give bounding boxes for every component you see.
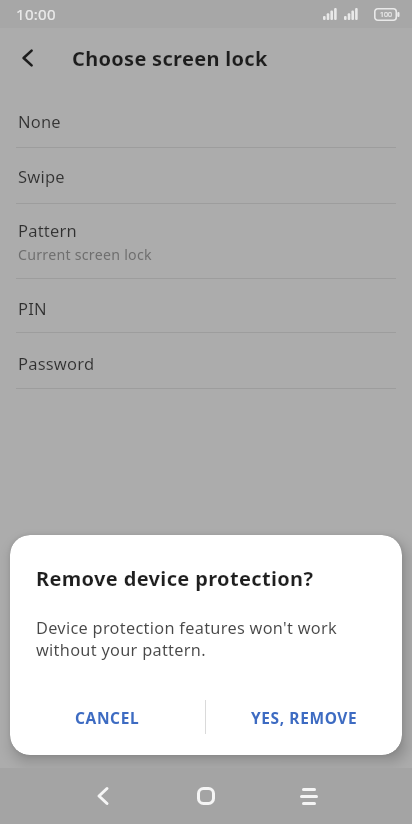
staticText: YES, REMOVE [251, 707, 358, 728]
staticText: Pattern [18, 219, 77, 241]
button[interactable] [281, 768, 337, 824]
staticText: PIN [18, 297, 47, 319]
staticText: CANCEL [75, 707, 140, 728]
staticText: 10:00 [16, 4, 56, 24]
button[interactable]: Swipe [0, 148, 412, 203]
staticText: Remove device protection? [36, 565, 314, 592]
button[interactable]: Password [0, 333, 412, 388]
staticText: 100 [380, 10, 393, 20]
button[interactable] [0, 30, 56, 86]
button[interactable] [75, 768, 131, 824]
staticText: Device protection features won't work wi… [36, 617, 338, 661]
staticText: Choose screen lock [72, 45, 268, 72]
button[interactable]: YES, REMOVE [206, 695, 402, 739]
button[interactable]: PIN [0, 279, 412, 332]
staticText: Current screen lock [18, 245, 152, 264]
staticText: Password [18, 352, 95, 374]
staticText: Swipe [18, 165, 65, 187]
staticText: None [18, 110, 61, 132]
button[interactable] [178, 768, 234, 824]
button[interactable]: None [0, 95, 412, 147]
button[interactable]: Pattern [0, 204, 412, 278]
button[interactable]: CANCEL [10, 695, 205, 739]
